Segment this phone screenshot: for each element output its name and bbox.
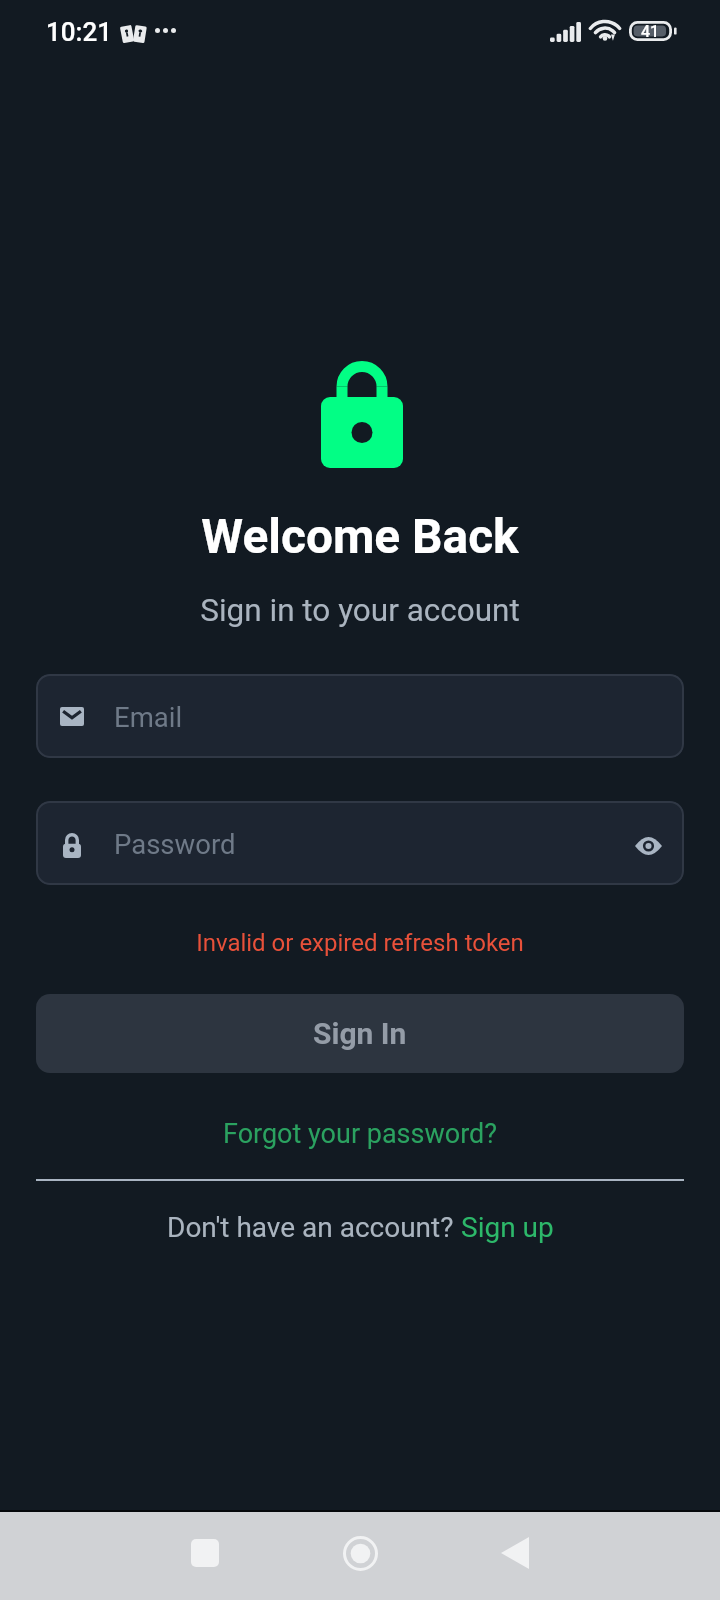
staticText: Sign up: [461, 1211, 554, 1244]
button[interactable]: Recent apps: [165, 1509, 245, 1597]
staticText: Don't have an account?: [167, 1211, 461, 1244]
staticText: Welcome Back: [201, 509, 519, 565]
staticText: Sign In: [313, 1016, 407, 1051]
staticText: Email: [114, 701, 183, 733]
staticText: Sign in to your account: [200, 592, 520, 629]
staticText: Invalid or expired refresh token: [196, 929, 524, 957]
staticText: 10:21: [46, 17, 113, 47]
staticText: Forgot your password?: [223, 1118, 498, 1150]
staticText: 41: [641, 22, 660, 41]
button[interactable]: Forgot your password?: [183, 1108, 538, 1160]
button[interactable]: Sign In: [36, 994, 684, 1073]
button[interactable]: Password: [36, 801, 684, 885]
button[interactable]: Home: [320, 1509, 400, 1597]
button[interactable]: Email: [36, 674, 684, 758]
button[interactable]: Sign up: [461, 1211, 554, 1244]
staticText: Password: [114, 828, 236, 860]
button[interactable]: Back: [475, 1509, 555, 1597]
button[interactable]: Show password: [626, 824, 670, 868]
